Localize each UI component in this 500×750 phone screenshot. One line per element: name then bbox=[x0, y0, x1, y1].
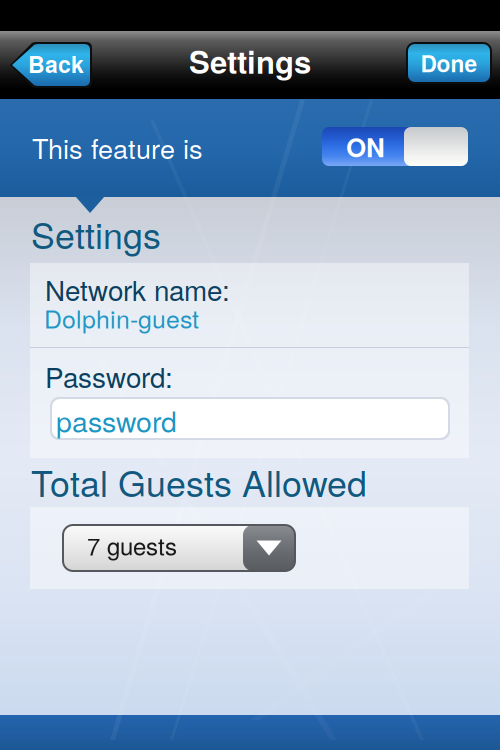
staticText: ON bbox=[346, 128, 385, 165]
staticText: Done bbox=[420, 47, 477, 79]
button[interactable]: 7 guests bbox=[63, 525, 295, 571]
staticText: This feature is bbox=[32, 128, 203, 167]
staticText: Total Guests Allowed bbox=[31, 456, 367, 507]
staticText: Dolphin-guest bbox=[44, 300, 199, 335]
button[interactable]: Back bbox=[10, 42, 92, 88]
staticText: password bbox=[56, 400, 177, 441]
staticText: Settings bbox=[31, 208, 161, 259]
staticText: Network name: bbox=[45, 269, 230, 309]
button[interactable]: Feature on bbox=[322, 127, 468, 166]
staticText: 7 guests bbox=[87, 528, 177, 562]
button[interactable]: Done bbox=[406, 42, 492, 84]
staticText: Back bbox=[28, 47, 84, 80]
staticText: Password: bbox=[45, 356, 173, 396]
staticText: Settings bbox=[189, 39, 311, 83]
